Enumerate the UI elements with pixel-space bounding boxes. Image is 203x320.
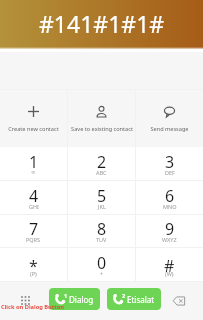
staticText: ABC	[96, 169, 107, 176]
staticText: PQRS	[26, 236, 41, 243]
button[interactable]: 1	[0, 147, 67, 180]
button[interactable]: 3	[136, 147, 203, 180]
staticText: 9	[165, 218, 175, 240]
staticText: 4	[29, 185, 39, 207]
staticText: 8	[97, 218, 107, 240]
button[interactable]: 1	[49, 288, 100, 310]
button[interactable]: Backspace	[168, 290, 190, 312]
button[interactable]: #	[136, 248, 203, 281]
staticText: Etisalat	[127, 294, 155, 305]
staticText: Click on Dialog Button	[1, 303, 64, 311]
button[interactable]: 6	[136, 181, 203, 214]
staticText: *	[29, 255, 38, 277]
staticText: 1	[29, 151, 39, 173]
button[interactable]: Save to existing contact	[68, 90, 135, 147]
staticText: 2	[122, 292, 126, 299]
button[interactable]: 9	[136, 214, 203, 247]
staticText: 6	[165, 185, 175, 207]
staticText: GHI	[29, 203, 39, 210]
staticText: 0	[97, 252, 107, 274]
staticText: #141#1#1#	[39, 8, 165, 39]
button[interactable]: Keypad	[14, 289, 36, 311]
staticText: WXYZ	[162, 236, 177, 243]
staticText: ∞	[31, 169, 36, 175]
staticText: TUV	[96, 236, 107, 243]
button[interactable]: Create new contact	[0, 90, 67, 147]
button[interactable]: 0	[68, 248, 135, 281]
button[interactable]: *	[0, 248, 67, 281]
staticText: (P)	[30, 270, 37, 277]
staticText: Create new contact	[8, 125, 59, 133]
staticText: #	[164, 255, 175, 277]
staticText: DEF	[165, 169, 175, 176]
button[interactable]: Send message	[136, 90, 203, 147]
staticText: Send message	[150, 125, 189, 133]
button[interactable]: 8	[68, 214, 135, 247]
staticText: 2	[97, 151, 107, 173]
staticText: +	[100, 270, 104, 277]
button[interactable]: 5	[68, 181, 135, 214]
staticText: 1	[64, 292, 68, 299]
button[interactable]: 2	[68, 147, 135, 180]
staticText: MNO	[163, 203, 177, 210]
button[interactable]: 2	[107, 288, 161, 310]
staticText: 3	[165, 151, 175, 173]
staticText: JKL	[98, 203, 106, 210]
button[interactable]: 7	[0, 214, 67, 247]
staticText: (W)	[165, 270, 174, 277]
staticText: Dialog	[69, 294, 94, 305]
staticText: Save to existing contact	[71, 125, 133, 133]
button[interactable]: 4	[0, 181, 67, 214]
staticText: 7	[29, 218, 39, 240]
staticText: 5	[97, 185, 107, 207]
